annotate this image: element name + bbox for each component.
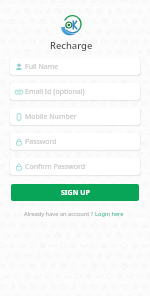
button[interactable]: Mobile Number [10,108,140,125]
staticText: Mobile Number [25,112,77,122]
button[interactable]: SIGN UP [11,184,139,201]
staticText: Recharge [50,39,93,52]
staticText: Login here [95,210,124,218]
staticText: Password [25,137,57,147]
staticText: SIGN UP [61,188,90,198]
button[interactable]: Password [10,133,140,150]
staticText: Confirm Password [25,162,86,172]
staticText: Already have an account ? [24,210,95,218]
button[interactable]: Confirm Password [10,158,140,175]
staticText: Email Id (optional) [25,87,85,97]
staticText: Full Name [25,62,59,72]
button[interactable]: Full Name [10,58,140,75]
button[interactable]: Email Id (optional) [10,83,140,100]
button[interactable]: Login here [95,210,124,218]
